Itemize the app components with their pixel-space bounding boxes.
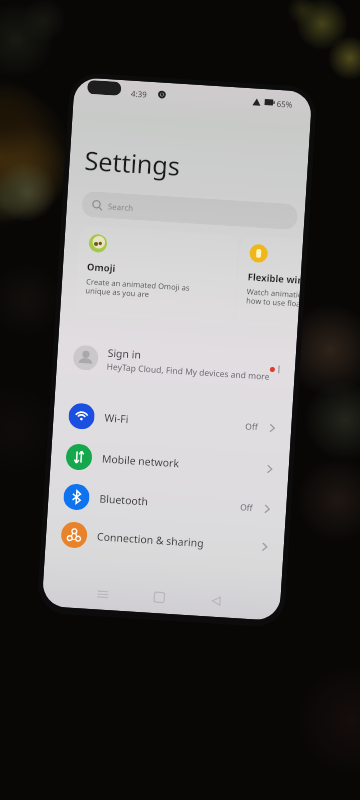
button[interactable]: Search [81,191,298,230]
staticText: Create an animated Omoji as unique as yo… [85,276,190,302]
button[interactable]: Wi-Fi [52,395,292,448]
staticText: Bluetooth [99,491,149,508]
button[interactable]: Sign in [56,333,296,392]
staticText: Watch animation to learn how to use floa… [246,286,300,309]
button[interactable]: Connection & sharing [45,514,285,567]
staticText: 4:39 [131,88,147,100]
button[interactable]: Recent apps [90,581,115,607]
staticText: 65% [276,98,293,110]
staticText: Off [240,501,253,514]
staticText: HeyTap Cloud, Find My devices and more [106,361,270,383]
button[interactable]: Back [203,588,229,614]
button[interactable]: Flexible window [235,236,303,327]
staticText: Off [245,420,259,433]
button[interactable]: Home [147,585,172,610]
button[interactable]: Omoji [74,226,239,323]
staticText: Settings [84,143,182,184]
staticText: Mobile network [101,451,180,470]
staticText: Omoji [87,260,116,275]
button[interactable]: Mobile network [50,436,290,489]
staticText: Wi-Fi [104,411,130,426]
staticText: Sign in [107,346,142,362]
staticText: Flexible window [247,270,301,287]
button[interactable]: Bluetooth [47,476,287,529]
staticText: Search [107,200,134,213]
staticText: Connection & sharing [97,529,204,550]
